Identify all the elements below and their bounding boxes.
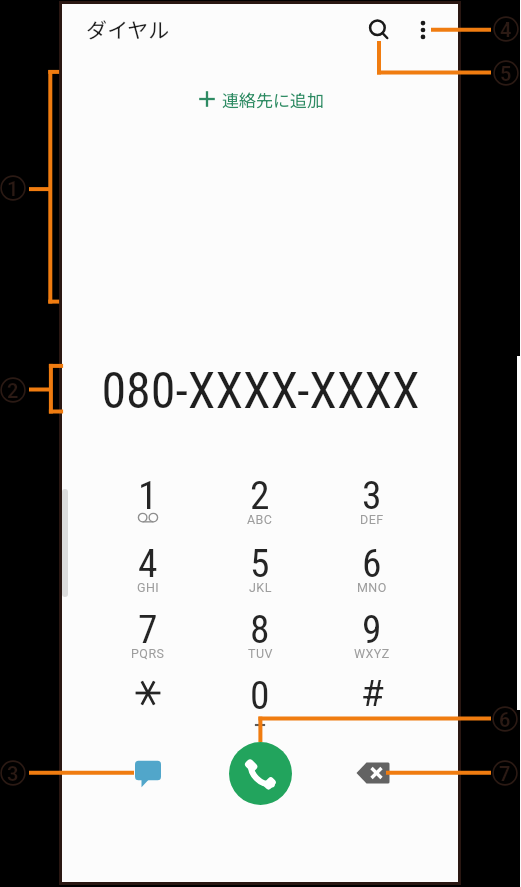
- button[interactable]: 0: [208, 664, 312, 730]
- button[interactable]: 7: [96, 598, 200, 664]
- staticText: 7: [499, 762, 511, 785]
- button[interactable]: Backspace: [349, 749, 397, 797]
- staticText: TUV: [248, 646, 273, 661]
- staticText: 0: [250, 672, 270, 718]
- staticText: 6: [499, 708, 511, 731]
- button[interactable]: Message: [124, 749, 172, 797]
- button[interactable]: 8: [208, 598, 312, 664]
- button[interactable]: 6: [320, 532, 424, 598]
- staticText: JKL: [249, 580, 272, 595]
- staticText: 連絡先に追加: [222, 87, 324, 112]
- staticText: 7: [138, 606, 158, 652]
- staticText: PQRS: [131, 646, 165, 661]
- staticText: GHI: [137, 580, 160, 595]
- staticText: 4: [138, 540, 158, 586]
- staticText: 6: [362, 540, 382, 586]
- button[interactable]: Search: [359, 10, 399, 50]
- button[interactable]: 1: [96, 464, 200, 530]
- button[interactable]: ダイヤル: [86, 13, 170, 45]
- staticText: WXYZ: [354, 646, 390, 661]
- staticText: 080-XXXX-XXXX: [101, 362, 420, 421]
- staticText: 9: [362, 606, 382, 652]
- button[interactable]: Star: [96, 660, 200, 726]
- staticText: 2: [7, 379, 19, 402]
- button[interactable]: Call: [229, 742, 292, 805]
- staticText: 5: [500, 62, 512, 85]
- button[interactable]: 4: [96, 532, 200, 598]
- staticText: 3: [362, 472, 382, 518]
- staticText: 5: [250, 540, 270, 586]
- button[interactable]: 3: [320, 464, 424, 530]
- staticText: 1: [138, 472, 158, 518]
- staticText: 3: [7, 762, 19, 785]
- staticText: ABC: [247, 512, 273, 527]
- staticText: 1: [7, 177, 19, 200]
- button[interactable]: 2: [208, 464, 312, 530]
- button[interactable]: 9: [320, 598, 424, 664]
- staticText: 8: [250, 606, 270, 652]
- staticText: ダイヤル: [86, 14, 170, 44]
- button[interactable]: More options: [403, 10, 443, 50]
- button[interactable]: 連絡先に追加: [198, 82, 324, 116]
- staticText: 2: [250, 472, 270, 518]
- button[interactable]: Pound: [320, 660, 424, 726]
- staticText: #: [361, 672, 384, 715]
- button[interactable]: 5: [208, 532, 312, 598]
- staticText: MNO: [357, 580, 387, 595]
- staticText: 4: [500, 18, 512, 41]
- staticText: DEF: [360, 512, 384, 527]
